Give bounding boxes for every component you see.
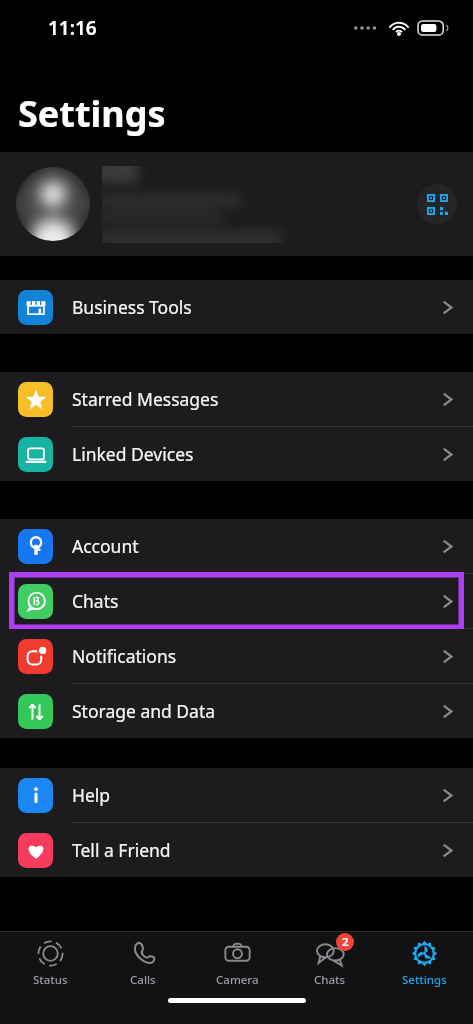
button[interactable]: Chats <box>286 932 374 992</box>
staticText: Business Tools <box>72 295 442 319</box>
button[interactable]: Starred Messages <box>0 372 473 426</box>
staticText: Help <box>72 783 442 807</box>
staticText: Camera <box>216 972 259 988</box>
staticText: Starred Messages <box>72 387 442 411</box>
button[interactable]: Business Tools <box>0 280 473 334</box>
button[interactable]: QR code <box>417 184 457 224</box>
staticText: Chats <box>72 589 442 613</box>
button[interactable]: Storage and Data <box>0 684 473 738</box>
button[interactable]: Help <box>0 768 473 822</box>
staticText: Account <box>72 534 442 558</box>
button[interactable]: Tell a Friend <box>0 823 473 877</box>
staticText: Storage and Data <box>72 699 442 723</box>
button[interactable]: Chats <box>0 574 473 628</box>
staticText: 2 <box>342 934 349 950</box>
button[interactable]: Status <box>6 932 94 992</box>
staticText: Calls <box>130 972 156 988</box>
staticText: Notifications <box>72 644 442 668</box>
button[interactable]: Account <box>0 519 473 573</box>
button[interactable]: QR code <box>0 152 473 256</box>
staticText: Status <box>33 972 68 988</box>
staticText: 11:16 <box>48 15 97 41</box>
button[interactable]: Linked Devices <box>0 427 473 481</box>
staticText: Chats <box>314 972 346 988</box>
button[interactable]: Settings <box>380 932 468 992</box>
staticText: Linked Devices <box>72 442 442 466</box>
staticText: Tell a Friend <box>72 838 442 862</box>
staticText: Settings <box>18 89 166 138</box>
staticText: Settings <box>402 972 447 988</box>
button[interactable]: Notifications <box>0 629 473 683</box>
button[interactable]: Calls <box>99 932 187 992</box>
button[interactable]: Camera <box>193 932 281 992</box>
